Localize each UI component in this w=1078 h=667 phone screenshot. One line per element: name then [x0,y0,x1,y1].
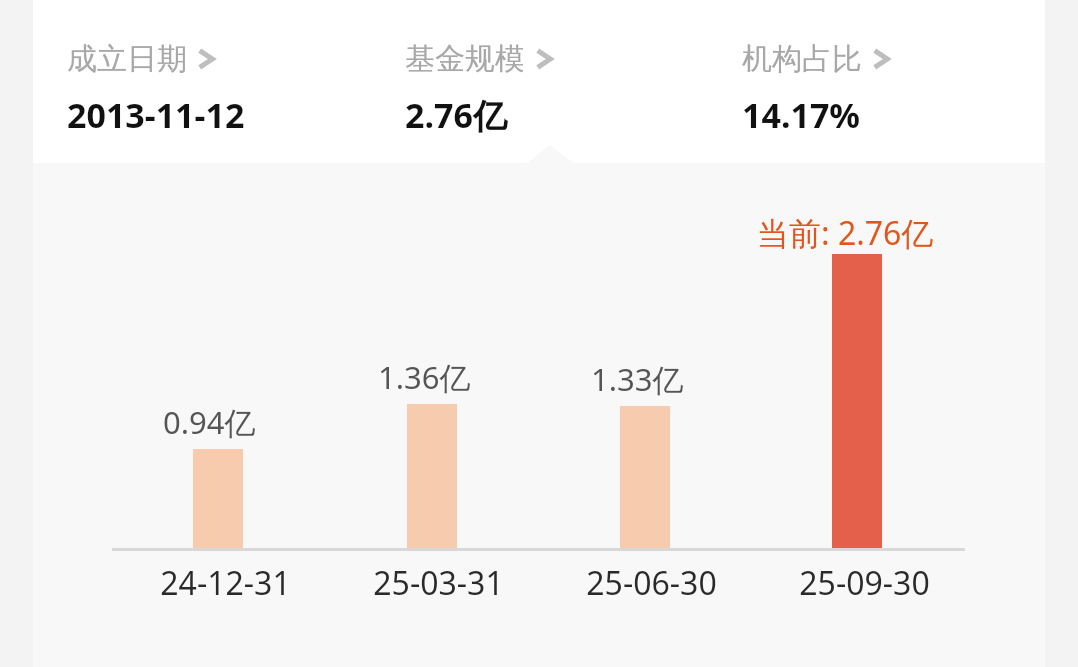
staticText: 1.33亿 [591,358,684,400]
staticText: 2.76亿 [405,92,507,138]
button[interactable]: 成立日期 [33,0,371,138]
staticText: 1.36亿 [378,356,471,398]
other: 查看机构占比 [872,46,890,72]
staticText: 成立日期 [67,40,187,78]
other: 查看基金规模 [535,46,553,72]
button[interactable]: 基金规模 [371,0,708,138]
staticText: 24-12-31 [138,561,313,605]
staticText: 0.94亿 [163,401,256,443]
staticText: 当前: 2.76亿 [757,211,934,255]
staticText: 2013-11-12 [67,92,245,138]
staticText: 25-06-30 [564,561,739,605]
other: 查看成立日期 [197,46,215,72]
staticText: 14.17% [742,92,861,138]
staticText: 机构占比 [742,40,862,78]
staticText: 25-03-31 [351,561,526,605]
button[interactable]: 机构占比 [708,0,1045,138]
staticText: 基金规模 [405,40,525,78]
staticText: 25-09-30 [777,561,952,605]
